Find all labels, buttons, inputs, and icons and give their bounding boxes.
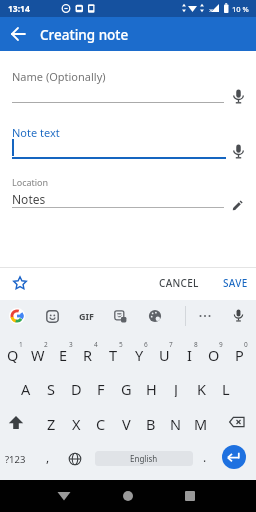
staticText: D	[71, 379, 82, 397]
button[interactable]: CANCEL	[153, 272, 205, 294]
button[interactable]	[52, 484, 76, 508]
button[interactable]	[9, 308, 25, 324]
staticText: 7	[169, 340, 173, 349]
button[interactable]: GIF	[74, 307, 98, 325]
button[interactable]: X	[64, 414, 88, 432]
staticText: F	[97, 379, 105, 397]
staticText: Z	[47, 414, 56, 432]
staticText: ?123	[5, 453, 26, 466]
button[interactable]	[232, 309, 245, 322]
button[interactable]	[116, 484, 140, 508]
button[interactable]	[114, 310, 127, 323]
button[interactable]	[6, 414, 26, 432]
staticText: O	[208, 345, 220, 363]
staticText: CANCEL	[159, 276, 199, 290]
button[interactable]	[178, 484, 202, 508]
staticText: U	[159, 345, 170, 363]
staticText: S	[47, 379, 55, 397]
button[interactable]: Q	[1, 345, 25, 363]
button[interactable]: .	[193, 448, 217, 466]
button[interactable]	[8, 24, 28, 44]
button[interactable]: R	[76, 345, 100, 363]
staticText: P	[235, 345, 244, 363]
staticText: 2	[44, 340, 48, 349]
button[interactable]	[231, 199, 244, 212]
button[interactable]: P	[227, 345, 251, 363]
button[interactable]: A	[14, 379, 38, 397]
staticText: .	[203, 449, 207, 465]
staticText: 10 %	[232, 4, 249, 14]
staticText: 1	[19, 340, 23, 349]
button[interactable]	[231, 144, 246, 159]
staticText: V	[122, 414, 131, 432]
button[interactable]: S	[39, 379, 63, 397]
button[interactable]: E	[51, 345, 75, 363]
staticText: 4	[94, 340, 98, 349]
button[interactable]: D	[64, 379, 88, 397]
button[interactable]	[196, 308, 214, 324]
staticText: M	[194, 414, 208, 432]
staticText: A	[21, 379, 31, 397]
button[interactable]: Z	[39, 414, 63, 432]
staticText: GIF	[79, 310, 94, 322]
button[interactable]	[231, 89, 246, 104]
staticText: Q	[7, 345, 19, 363]
staticText: G	[121, 379, 132, 397]
button[interactable]: SAVE	[215, 272, 255, 294]
button[interactable]: ?123	[0, 450, 30, 468]
staticText: Y	[135, 345, 144, 363]
button[interactable]: K	[189, 379, 213, 397]
button[interactable]: F	[89, 379, 113, 397]
button[interactable]	[68, 452, 82, 466]
button[interactable]: M	[189, 414, 213, 432]
staticText: H	[146, 379, 157, 397]
button[interactable]: W	[26, 345, 50, 363]
staticText: N	[170, 414, 182, 432]
staticText: T	[109, 345, 118, 363]
staticText: Location	[12, 176, 49, 188]
button[interactable]: G	[114, 379, 138, 397]
button[interactable]: L	[214, 379, 238, 397]
button[interactable]	[12, 275, 28, 291]
staticText: Creating note	[40, 26, 129, 44]
staticText: Notes	[12, 191, 46, 207]
button[interactable]: O	[202, 345, 226, 363]
button[interactable]	[227, 414, 247, 432]
button[interactable]: U	[152, 345, 176, 363]
staticText: 5	[119, 340, 123, 349]
staticText: X	[72, 414, 81, 432]
button[interactable]: C	[89, 414, 113, 432]
button[interactable]: B	[139, 414, 163, 432]
button[interactable]: ,	[36, 448, 60, 466]
button[interactable]: T	[101, 345, 125, 363]
staticText: Note text	[12, 125, 60, 140]
button[interactable]: Y	[127, 345, 151, 363]
staticText: I	[187, 345, 192, 363]
staticText: C	[96, 414, 106, 432]
button[interactable]	[148, 309, 162, 323]
button[interactable]	[46, 310, 59, 323]
button[interactable]: N	[164, 414, 188, 432]
staticText: Name (Optionally)	[12, 69, 106, 84]
button[interactable]: I	[177, 345, 201, 363]
staticText: 6	[144, 340, 148, 349]
staticText: E	[59, 345, 68, 363]
staticText: ,	[46, 449, 50, 465]
staticText: SAVE	[223, 276, 248, 290]
staticText: L	[222, 379, 230, 397]
button[interactable]	[222, 445, 246, 469]
staticText: 9	[219, 340, 223, 349]
button[interactable]: J	[164, 379, 188, 397]
staticText: 8	[194, 340, 198, 349]
button[interactable]: English	[95, 451, 193, 466]
staticText: B	[146, 414, 156, 432]
staticText: 0	[244, 340, 248, 349]
staticText: English	[130, 453, 158, 464]
staticText: 13:14	[8, 3, 30, 15]
staticText: 3	[69, 340, 73, 349]
button[interactable]: H	[139, 379, 163, 397]
staticText: R	[83, 345, 93, 363]
button[interactable]: V	[114, 414, 138, 432]
staticText: J	[174, 379, 178, 397]
staticText: W	[31, 345, 45, 363]
